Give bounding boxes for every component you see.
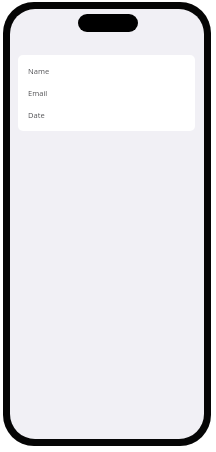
staticText: Name bbox=[28, 66, 50, 76]
other: Dynamic island bbox=[78, 14, 138, 32]
staticText: Date bbox=[28, 110, 45, 120]
button[interactable]: Email bbox=[18, 82, 195, 104]
staticText: Email bbox=[28, 88, 48, 98]
button[interactable]: Date bbox=[18, 104, 195, 126]
button[interactable]: Name bbox=[18, 60, 195, 82]
